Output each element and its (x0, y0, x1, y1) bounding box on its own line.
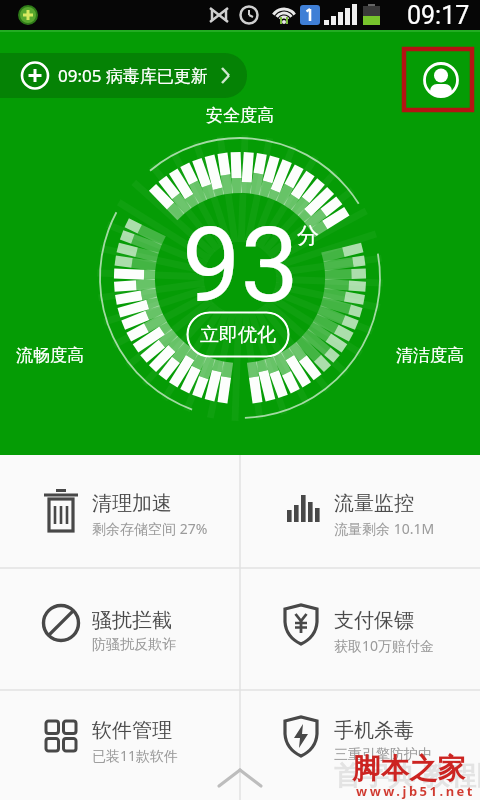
staticText: 流量剩余 10.1M (334, 519, 435, 538)
button[interactable] (200, 755, 280, 800)
staticText: 分 (297, 222, 319, 250)
staticText: 安全度高 (206, 105, 274, 126)
button[interactable]: 手机杀毒 (240, 690, 480, 800)
staticText: 流畅度高 (16, 345, 84, 366)
staticText: 防骚扰反欺诈 (92, 636, 176, 654)
staticText: 流量监控 (334, 491, 414, 516)
staticText: 支付保镖 (334, 608, 414, 633)
button[interactable]: 流量监控 (240, 455, 480, 568)
staticText: 09:05 病毒库已更新 (58, 64, 208, 87)
button[interactable]: 支付保镖 (240, 568, 480, 690)
staticText: 脚本之家 (352, 751, 466, 786)
staticText: 立即优化 (200, 323, 276, 347)
button[interactable]: 骚扰拦截 (0, 568, 240, 690)
staticText: 获取10万赔付金 (334, 636, 435, 655)
staticText: 手机杀毒 (334, 718, 414, 743)
staticText: 93 (182, 205, 299, 323)
staticText: 清洁度高 (396, 345, 464, 366)
button[interactable]: 清理加速 (0, 455, 240, 568)
button[interactable]: 09:05 病毒库已更新 (0, 53, 247, 98)
staticText: 软件管理 (92, 718, 172, 743)
button[interactable]: 软件管理 (0, 690, 240, 800)
button[interactable] (402, 47, 474, 112)
staticText: 清理加速 (92, 491, 172, 516)
staticText: 剩余存储空间 27% (92, 519, 208, 538)
staticText: 已装11款软件 (92, 746, 179, 765)
staticText: 三重引擎防护中 (334, 746, 432, 764)
staticText: 09:17 (407, 1, 470, 30)
staticText: 骚扰拦截 (92, 608, 172, 633)
button[interactable]: 立即优化 (186, 311, 290, 358)
staticText: 首字典 教程网 (334, 756, 480, 793)
staticText: www.jb51.net (356, 782, 475, 800)
